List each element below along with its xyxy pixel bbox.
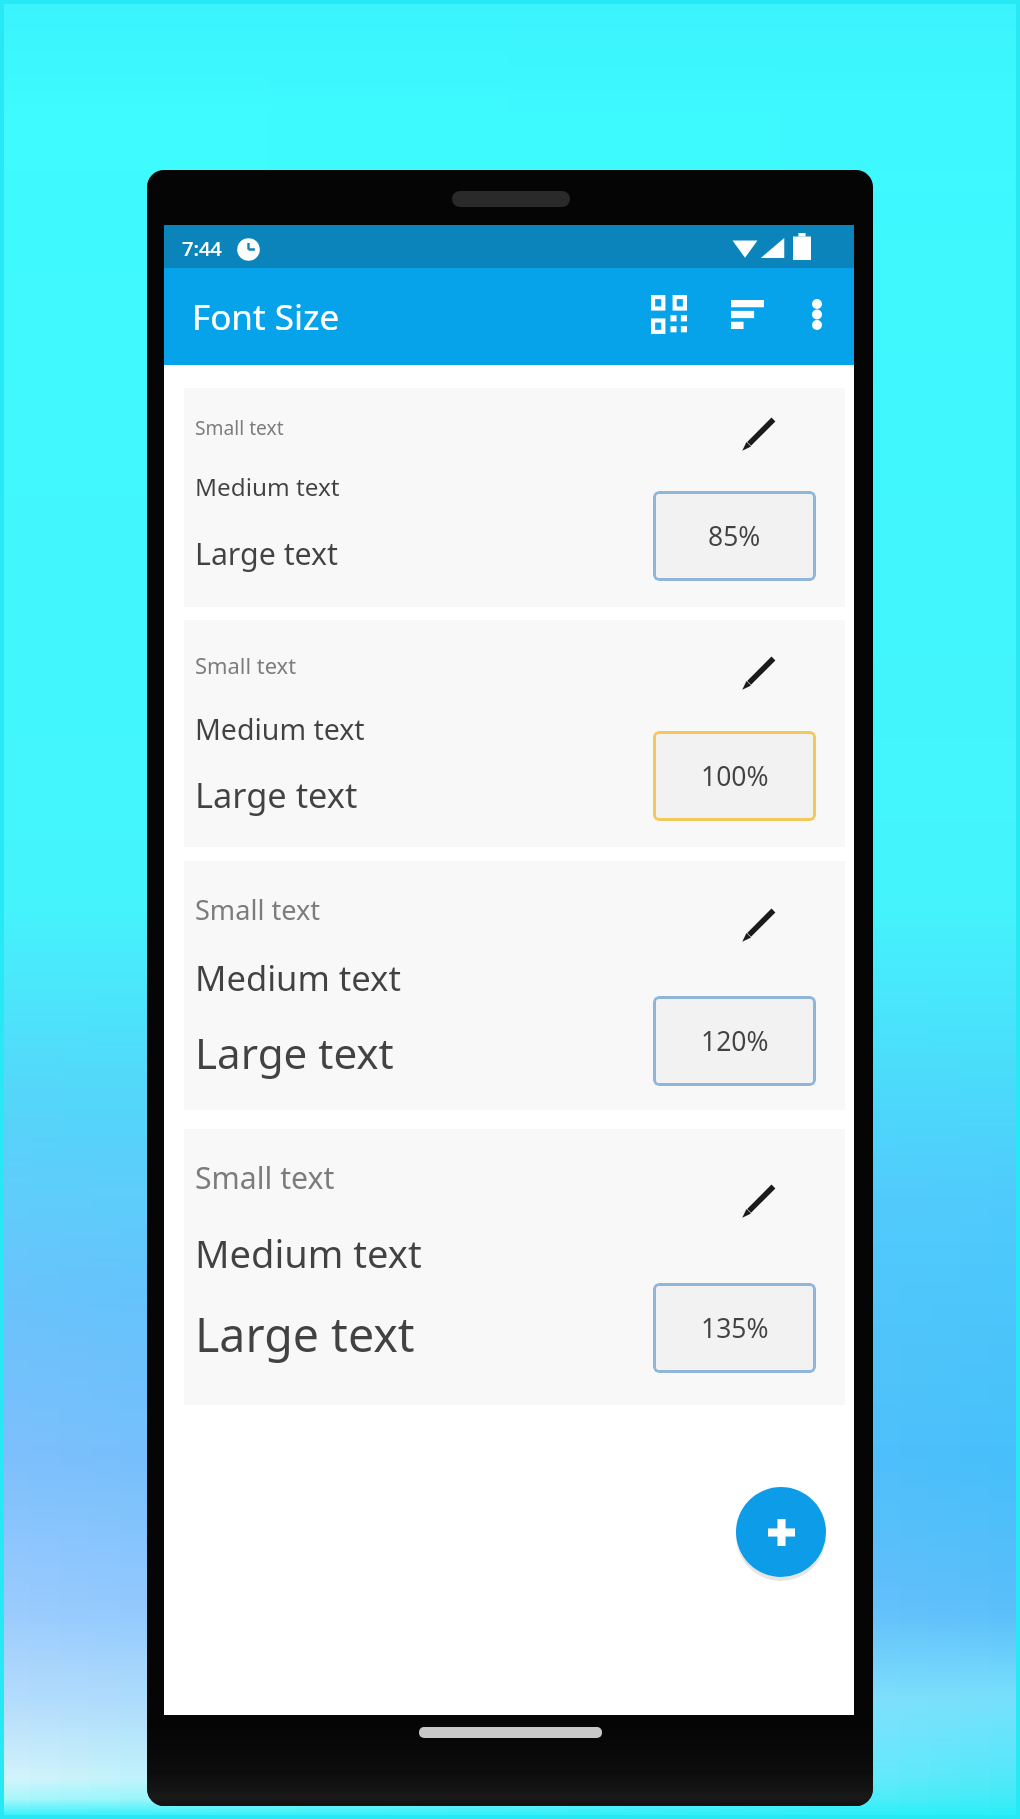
staticText: Font Size	[192, 293, 340, 341]
button[interactable]: Edit	[729, 895, 789, 955]
button[interactable]: QR code	[638, 283, 700, 345]
staticText: Small text	[195, 651, 297, 680]
button[interactable]: Edit	[729, 1171, 789, 1231]
button[interactable]: 85%	[653, 491, 816, 581]
staticText: 85%	[708, 518, 761, 554]
button[interactable]: Small text	[184, 620, 845, 847]
staticText: Small text	[195, 414, 284, 440]
button[interactable]: 100%	[653, 731, 816, 821]
staticText: Small text	[195, 891, 321, 927]
button[interactable]: Edit	[729, 643, 789, 703]
staticText: 135%	[701, 1310, 769, 1346]
staticText: Large text	[195, 533, 339, 574]
button[interactable]: Small text	[184, 861, 845, 1110]
staticText: Medium text	[195, 710, 365, 748]
staticText: 120%	[701, 1023, 769, 1059]
button[interactable]: More options	[786, 283, 848, 345]
button[interactable]: Sort	[716, 283, 778, 345]
button[interactable]: Edit	[729, 404, 789, 464]
staticText: Medium text	[195, 470, 340, 503]
staticText: Medium text	[195, 1227, 422, 1278]
staticText: Large text	[195, 1302, 415, 1364]
button[interactable]: Add	[736, 1487, 826, 1577]
button[interactable]: Small text	[184, 388, 845, 607]
staticText: Large text	[195, 771, 358, 817]
staticText: 7:44	[182, 235, 222, 262]
staticText: Medium text	[195, 954, 401, 1000]
button[interactable]: 135%	[653, 1283, 816, 1373]
button[interactable]: 120%	[653, 996, 816, 1086]
button[interactable]: Small text	[184, 1129, 845, 1405]
staticText: Small text	[195, 1157, 335, 1197]
staticText: Large text	[195, 1024, 394, 1080]
staticText: 100%	[701, 758, 769, 794]
